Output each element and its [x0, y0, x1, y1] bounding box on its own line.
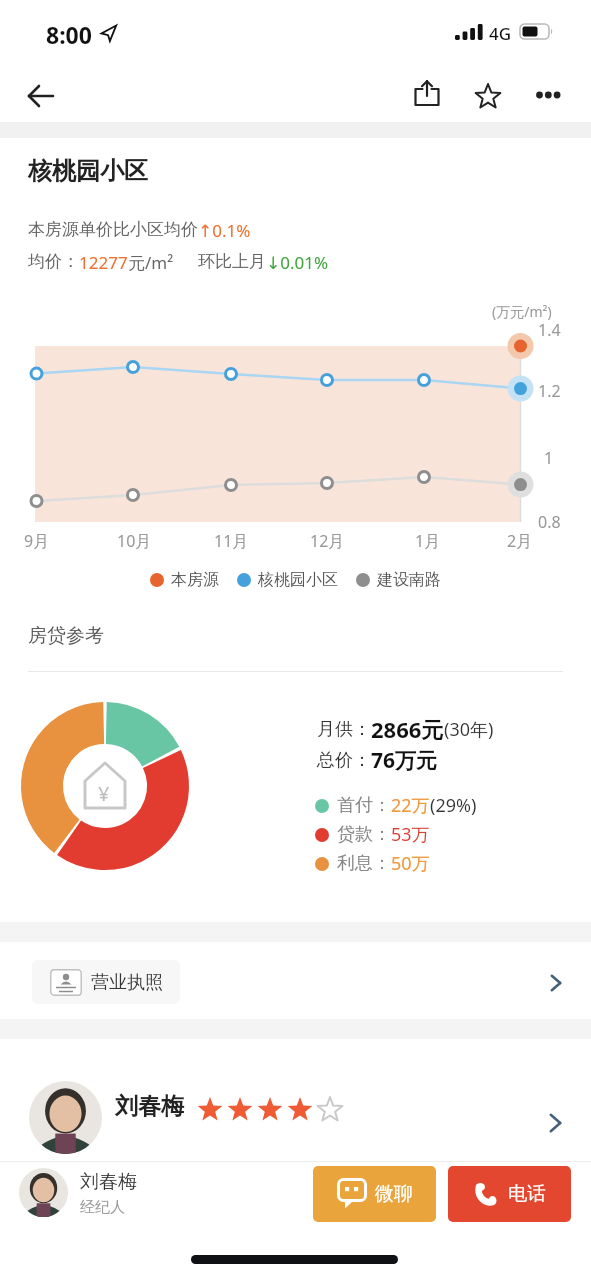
staticText: ↓0.01% [266, 251, 329, 274]
staticText: 8:00 [46, 19, 92, 50]
staticText: 核桃园小区 [28, 156, 148, 186]
staticText: 9月 [24, 530, 50, 552]
staticText: 11月 [214, 530, 249, 552]
staticText: 元/m² [128, 251, 174, 274]
staticText: 经纪人 [80, 1198, 125, 1217]
staticText: 10月 [117, 530, 152, 552]
staticText: ¥ [98, 780, 110, 807]
staticText: 刘春梅 [115, 1092, 184, 1121]
staticText: 贷款： [337, 823, 391, 846]
staticText: 12277 [79, 251, 128, 274]
staticText: 53万 [391, 822, 430, 847]
staticText: 刘春梅 [80, 1170, 137, 1194]
staticText: 1.2 [538, 380, 561, 402]
button[interactable] [28, 84, 54, 108]
staticText: 电话 [508, 1182, 546, 1206]
button[interactable]: 营业执照 [32, 960, 180, 1004]
staticText: 环比上月 [198, 251, 266, 272]
button[interactable] [414, 80, 440, 106]
staticText: 核桃园小区 [258, 570, 338, 590]
staticText: 2月 [507, 530, 533, 552]
staticText: 2866元 [371, 714, 444, 744]
staticText: 总价： [317, 749, 371, 772]
staticText: 本房源单价比小区均价 [28, 219, 198, 240]
staticText: (30年) [444, 717, 494, 742]
button[interactable] [536, 90, 562, 100]
staticText: 1 [544, 447, 554, 469]
staticText: 建设南路 [377, 570, 441, 590]
staticText: 12月 [310, 530, 345, 552]
staticText: 22万 [391, 793, 430, 818]
staticText: 微聊 [375, 1182, 413, 1206]
staticText: 首付： [337, 794, 391, 817]
staticText: (万元/m²) [492, 302, 552, 321]
staticText: 1月 [415, 530, 441, 552]
button[interactable] [474, 82, 502, 110]
staticText: (29%) [430, 793, 477, 818]
staticText: 76万元 [371, 746, 438, 775]
staticText: 4G [489, 22, 512, 45]
staticText: 本房源 [171, 570, 219, 590]
staticText: 营业执照 [91, 971, 163, 994]
staticText: 50万 [391, 851, 430, 876]
staticText: 房贷参考 [28, 624, 104, 648]
staticText: 月供： [317, 718, 371, 741]
button[interactable]: 电话 [448, 1166, 571, 1222]
button[interactable] [0, 1039, 591, 1161]
staticText: 1.4 [538, 319, 561, 341]
button[interactable]: 微聊 [313, 1166, 436, 1222]
staticText: 利息： [337, 852, 391, 875]
staticText: ↑0.1% [198, 219, 251, 242]
staticText: 均价： [28, 251, 79, 272]
staticText: 0.8 [538, 511, 561, 533]
